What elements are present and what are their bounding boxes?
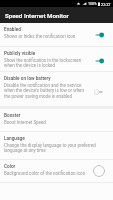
button[interactable]: Enabled <box>0 23 113 47</box>
staticText: Color <box>4 164 16 170</box>
staticText: Shows or hides the notification icon <box>4 34 76 39</box>
staticText: Speed Internet Monitor <box>5 12 69 19</box>
staticText: Disable on low battery <box>4 76 51 82</box>
button[interactable]: Disable on low battery <box>0 72 113 106</box>
button[interactable]: Switch on <box>93 30 105 40</box>
button[interactable]: Switch on <box>93 56 105 66</box>
staticText: Boost Internet Speed <box>4 120 46 125</box>
staticText: Language <box>4 136 25 142</box>
staticText: Booster <box>4 113 21 119</box>
staticText: Background color of the notification ico… <box>4 171 86 176</box>
staticText: Enabled <box>4 27 21 33</box>
button[interactable]: Publicly visible <box>0 47 113 72</box>
staticText: Disable the notification and the service… <box>4 83 84 100</box>
button[interactable]: Language <box>0 132 113 160</box>
staticText: Change the display language to your pref… <box>4 143 96 154</box>
staticText: 22:27 <box>101 2 111 6</box>
button[interactable]: Switch off <box>93 87 105 97</box>
staticText: 100% <box>88 2 97 6</box>
staticText: Publicly visible <box>4 51 36 57</box>
button[interactable]: Color <box>0 160 113 183</box>
staticText: Show the notification in the lockscreen … <box>4 58 82 69</box>
button[interactable]: Booster <box>0 109 113 132</box>
button[interactable]: Pick notification icon colour <box>93 165 105 177</box>
